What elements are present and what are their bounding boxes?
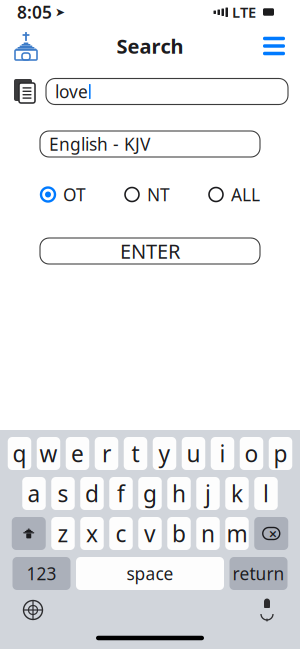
staticText: z <box>57 518 68 548</box>
staticText: c <box>115 518 126 548</box>
button[interactable]: ENTER <box>40 238 260 264</box>
button[interactable]: d <box>80 477 104 510</box>
button[interactable]: b <box>167 517 191 550</box>
staticText: y <box>158 438 170 468</box>
staticText: ➤ <box>55 5 65 19</box>
staticText: ENTER <box>120 238 180 264</box>
staticText: l <box>263 478 269 508</box>
button[interactable]: i <box>211 437 234 470</box>
staticText: love <box>55 80 88 103</box>
button[interactable]: m <box>225 517 249 550</box>
button[interactable]: s <box>51 477 75 510</box>
staticText: × <box>269 524 277 543</box>
button[interactable]: c <box>109 517 133 550</box>
staticText: r <box>102 438 111 468</box>
button[interactable]: Change keyboard <box>13 593 53 627</box>
button[interactable]: r <box>95 437 118 470</box>
button[interactable]: n <box>196 517 220 550</box>
button[interactable]: Menu <box>252 24 296 68</box>
staticText: s <box>57 478 68 508</box>
button[interactable]: t <box>124 437 147 470</box>
button[interactable]: return <box>229 557 287 590</box>
button[interactable]: Delete <box>254 517 288 550</box>
staticText: e <box>71 438 84 468</box>
staticText: w <box>39 438 57 468</box>
button[interactable]: NT <box>124 179 170 210</box>
staticText: h <box>172 478 186 508</box>
button[interactable]: o <box>240 437 263 470</box>
staticText: d <box>85 478 99 508</box>
staticText: x <box>86 518 98 548</box>
staticText: b <box>172 518 186 548</box>
button[interactable]: g <box>138 477 162 510</box>
staticText: n <box>201 518 215 548</box>
staticText: NT <box>147 183 170 206</box>
button[interactable]: e <box>66 437 89 470</box>
button[interactable]: l <box>254 477 278 510</box>
button[interactable]: OT <box>40 179 86 210</box>
staticText: LTE <box>232 2 256 22</box>
staticText: v <box>144 518 156 548</box>
button[interactable]: h <box>167 477 191 510</box>
button[interactable]: Shift <box>12 517 46 550</box>
staticText: 123 <box>26 562 56 585</box>
staticText: m <box>226 518 247 548</box>
staticText: k <box>231 478 243 508</box>
button[interactable]: j <box>196 477 220 510</box>
staticText: return <box>232 562 284 585</box>
staticText: q <box>12 438 26 468</box>
button[interactable]: 123 <box>12 557 70 590</box>
button[interactable]: q <box>8 437 31 470</box>
button[interactable]: u <box>182 437 205 470</box>
staticText: 8:05 <box>17 0 52 23</box>
staticText: p <box>273 438 287 468</box>
button[interactable]: k <box>225 477 249 510</box>
button[interactable]: z <box>51 517 75 550</box>
button[interactable]: Home <box>4 24 48 68</box>
staticText: j <box>205 478 211 508</box>
staticText: o <box>244 438 258 468</box>
button[interactable]: space <box>76 557 224 590</box>
button[interactable]: v <box>138 517 162 550</box>
staticText: t <box>131 438 139 468</box>
staticText: u <box>186 438 200 468</box>
staticText: ALL <box>231 183 260 206</box>
staticText: i <box>219 438 225 468</box>
button[interactable]: f <box>109 477 133 510</box>
staticText: a <box>27 478 40 508</box>
button[interactable]: p <box>269 437 292 470</box>
staticText: space <box>126 562 173 585</box>
staticText: OT <box>63 183 86 206</box>
button[interactable]: a <box>22 477 46 510</box>
button[interactable]: w <box>37 437 60 470</box>
button[interactable]: ALL <box>208 179 260 210</box>
staticText: Search <box>116 33 183 59</box>
staticText: English - KJV <box>49 132 150 155</box>
button[interactable]: x <box>80 517 104 550</box>
button[interactable]: y <box>153 437 176 470</box>
staticText: f <box>117 478 125 508</box>
staticText: g <box>143 478 157 508</box>
button[interactable]: Dictation <box>247 593 287 627</box>
